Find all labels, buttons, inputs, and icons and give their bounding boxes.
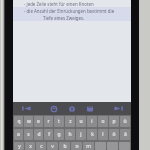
button[interactable]: g bbox=[54, 129, 64, 140]
button[interactable]: t bbox=[54, 116, 64, 127]
button[interactable]: v bbox=[47, 142, 58, 150]
button[interactable]: o bbox=[98, 116, 108, 127]
button[interactable]: j bbox=[76, 129, 86, 140]
staticText: g bbox=[57, 131, 61, 138]
staticText: q bbox=[17, 118, 21, 125]
button[interactable]: Clipboard bbox=[83, 102, 96, 115]
staticText: d bbox=[37, 131, 41, 138]
staticText: v bbox=[51, 143, 54, 150]
button[interactable]: ö bbox=[109, 129, 119, 140]
button[interactable]: a bbox=[14, 129, 23, 140]
button[interactable]: w bbox=[24, 116, 33, 127]
button[interactable]: n bbox=[71, 142, 82, 150]
button[interactable]: ä bbox=[120, 129, 130, 140]
staticText: j bbox=[80, 131, 82, 138]
staticText: a bbox=[17, 131, 20, 138]
staticText: ü bbox=[123, 118, 127, 125]
staticText: s bbox=[27, 131, 30, 138]
button[interactable]: y bbox=[14, 142, 24, 150]
button[interactable]: - jede Zeile steht für einen Knoten bbox=[13, 0, 131, 102]
staticText: - jede Zeile steht für einen Knoten bbox=[24, 1, 94, 7]
button[interactable]: e bbox=[34, 116, 43, 127]
button[interactable]: r bbox=[44, 116, 53, 127]
staticText: x bbox=[29, 143, 32, 150]
staticText: - die Anzahl der Einrückungen bestimmt d… bbox=[24, 8, 115, 14]
staticText: k bbox=[91, 131, 94, 138]
button[interactable]: s bbox=[24, 129, 33, 140]
staticText: y bbox=[18, 143, 21, 150]
staticText: c bbox=[40, 143, 43, 150]
staticText: Tiefe eines Zweiges. bbox=[43, 15, 85, 21]
button[interactable]: Emoji bbox=[47, 102, 60, 115]
staticText: ä bbox=[124, 131, 127, 138]
staticText: n bbox=[75, 143, 79, 150]
button[interactable]: z bbox=[65, 116, 75, 127]
button[interactable]: b bbox=[59, 142, 70, 150]
button[interactable]: k bbox=[87, 129, 97, 140]
staticText: b bbox=[63, 143, 67, 150]
button[interactable]: Settings bbox=[65, 102, 78, 115]
staticText: e bbox=[37, 118, 40, 125]
staticText: p bbox=[112, 118, 116, 125]
button[interactable]: x bbox=[25, 142, 35, 150]
staticText: m bbox=[86, 143, 91, 150]
staticText: t bbox=[58, 118, 60, 125]
button[interactable]: Next field bbox=[105, 102, 131, 115]
staticText: ö bbox=[112, 131, 116, 138]
button[interactable]: p bbox=[109, 116, 119, 127]
button[interactable]: d bbox=[34, 129, 43, 140]
button[interactable]: m bbox=[83, 142, 94, 150]
staticText: f bbox=[48, 131, 50, 138]
button[interactable]: c bbox=[36, 142, 46, 150]
staticText: h bbox=[68, 131, 72, 138]
staticText: i bbox=[91, 118, 93, 125]
staticText: o bbox=[101, 118, 105, 125]
button[interactable]: f bbox=[44, 129, 53, 140]
staticText: w bbox=[27, 118, 31, 125]
button[interactable]: Previous field bbox=[13, 102, 39, 115]
button[interactable]: u bbox=[76, 116, 86, 127]
button[interactable]: i bbox=[87, 116, 97, 127]
button[interactable]: h bbox=[65, 129, 75, 140]
staticText: u bbox=[79, 118, 83, 125]
staticText: l bbox=[102, 131, 104, 138]
button[interactable]: ü bbox=[120, 116, 130, 127]
button[interactable]: l bbox=[98, 129, 108, 140]
staticText: r bbox=[47, 118, 50, 125]
staticText: z bbox=[69, 118, 72, 125]
button[interactable]: q bbox=[14, 116, 23, 127]
